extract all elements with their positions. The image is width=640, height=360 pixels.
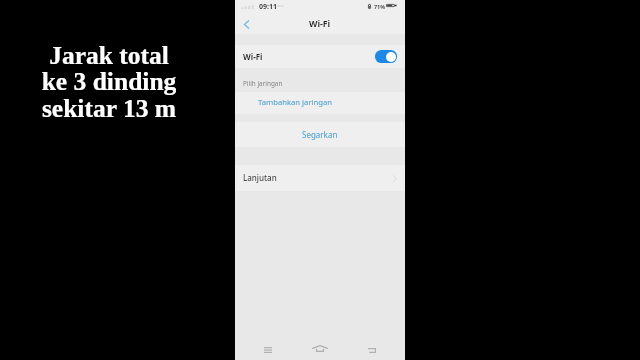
staticText: Pilih jaringan: [243, 79, 283, 88]
staticText: Segarkan: [302, 129, 338, 140]
button[interactable]: Home: [306, 337, 334, 360]
button[interactable]: Wi-Fi on: [375, 50, 397, 63]
button[interactable]: Recent apps: [254, 338, 282, 360]
button[interactable]: Navigate up: [235, 12, 257, 34]
staticText: Tambahkan jaringan: [258, 97, 333, 107]
staticText: Jarak total ke 3 dinding sekitar 13 m: [9, 41, 209, 123]
button[interactable]: Wi-Fi: [235, 45, 405, 68]
button[interactable]: Back: [358, 339, 386, 360]
staticText: Wi-Fi: [309, 18, 331, 30]
staticText: Wi-Fi: [243, 51, 263, 62]
staticText: Lanjutan: [243, 172, 277, 183]
button[interactable]: Segarkan: [235, 122, 405, 147]
button[interactable]: Tambahkan jaringan: [235, 92, 405, 114]
staticText: 71%: [374, 3, 386, 10]
button[interactable]: Lanjutan: [235, 165, 405, 191]
staticText: 09:11: [259, 2, 277, 12]
